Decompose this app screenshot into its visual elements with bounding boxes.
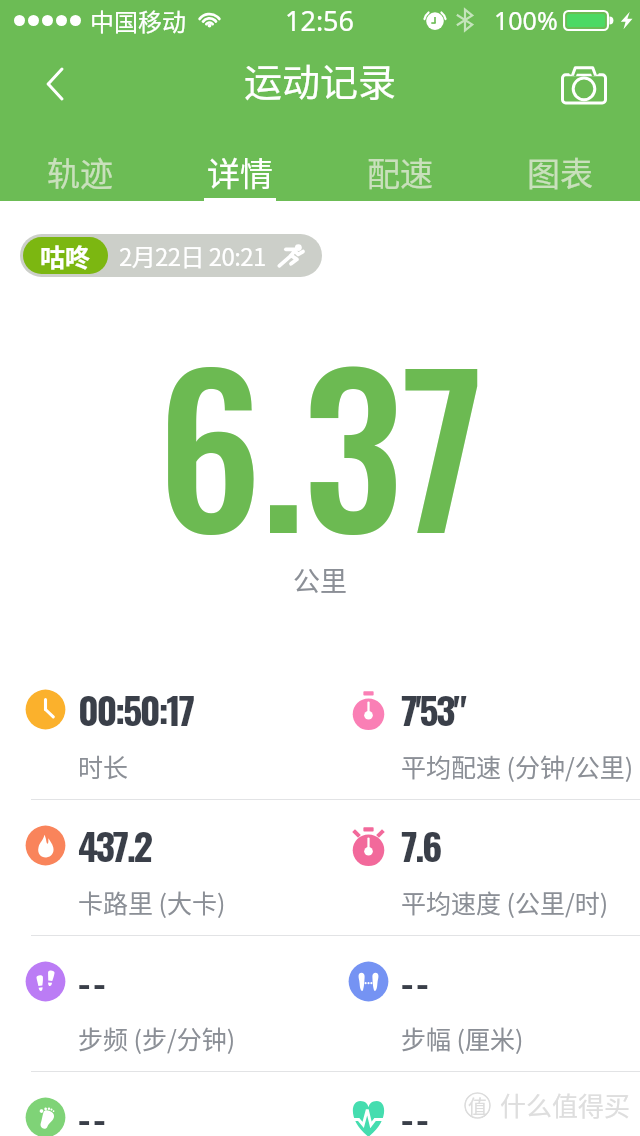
button[interactable]: -- (25, 936, 321, 1071)
button[interactable]: -- (25, 1072, 321, 1136)
button[interactable]: 437.2 (25, 800, 321, 935)
staticText: 中国移动 (90, 3, 186, 38)
staticText: 卡路里 (大卡) (78, 884, 226, 918)
staticText: 12:56 (285, 2, 355, 39)
staticText: 2月22日 20:21 (119, 238, 266, 273)
button[interactable]: 图表 (480, 130, 640, 201)
staticText: 平均速度 (公里/时) (401, 884, 609, 918)
button[interactable]: -- (348, 936, 640, 1071)
staticText: 平均配速 (分钟/公里) (401, 748, 634, 782)
staticText: -- (78, 1089, 109, 1136)
staticText: 00:50:17 (78, 681, 193, 737)
button[interactable]: 轨迹 (0, 130, 160, 201)
staticText: 6.37 (0, 292, 640, 591)
button[interactable]: Back (28, 57, 82, 111)
button[interactable]: 详情 (160, 130, 320, 201)
staticText: 值 (468, 1092, 488, 1119)
button[interactable]: 7.6 (348, 800, 640, 935)
button[interactable]: 7'53" (348, 664, 640, 799)
staticText: 时长 (78, 748, 129, 782)
staticText: 什么值得买 (500, 1086, 631, 1124)
staticText: -- (78, 953, 109, 1009)
staticText: 100% (494, 3, 558, 37)
staticText: 公里 (0, 560, 640, 599)
staticText: 配速 (367, 148, 433, 196)
button[interactable]: 00:50:17 (25, 664, 321, 799)
staticText: 437.2 (78, 817, 151, 873)
staticText: 步频 (步/分钟) (78, 1020, 236, 1054)
button[interactable]: 咕咚 (20, 234, 322, 277)
staticText: 详情 (207, 148, 273, 196)
button[interactable]: -- (348, 1072, 640, 1136)
staticText: 轨迹 (47, 148, 113, 196)
button[interactable]: Camera (555, 60, 613, 112)
staticText: 图表 (527, 148, 593, 196)
staticText: 运动记录 (244, 52, 397, 107)
staticText: -- (401, 1089, 432, 1136)
staticText: 7.6 (401, 817, 440, 873)
staticText: -- (401, 953, 432, 1009)
button[interactable]: 配速 (320, 130, 480, 201)
staticText: 步幅 (厘米) (401, 1020, 524, 1054)
staticText: 7'53" (401, 681, 465, 737)
staticText: 咕咚 (40, 238, 91, 274)
